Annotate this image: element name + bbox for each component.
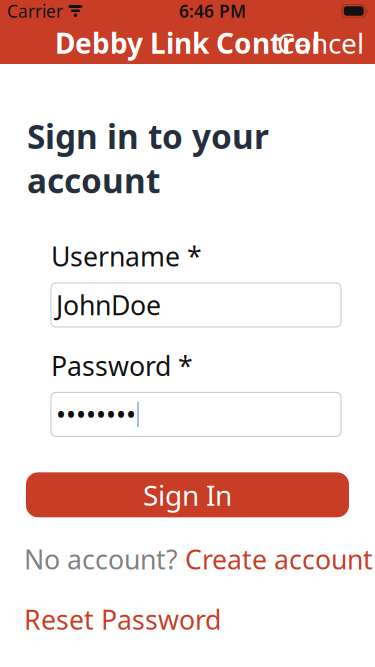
staticText: Sign in to your account xyxy=(27,114,269,202)
button[interactable]: Reset Password xyxy=(24,598,221,641)
staticText: Password * xyxy=(51,348,193,383)
staticText: 6:46 PM xyxy=(179,0,246,22)
staticText: Carrier xyxy=(7,0,63,22)
staticText: No account? xyxy=(24,541,185,577)
staticText: Reset Password xyxy=(24,602,221,637)
staticText: Debby Link Control xyxy=(55,24,320,62)
button[interactable]: Create account xyxy=(185,537,373,581)
button[interactable]: Cancel xyxy=(269,18,372,68)
staticText: Username * xyxy=(51,238,202,274)
staticText: •••••••• xyxy=(56,397,136,432)
staticText: Sign In xyxy=(143,476,232,513)
staticText: JohnDoe xyxy=(56,287,161,323)
staticText: Create account xyxy=(185,541,373,577)
button[interactable]: Sign In xyxy=(26,472,349,517)
staticText: Cancel xyxy=(277,24,364,62)
